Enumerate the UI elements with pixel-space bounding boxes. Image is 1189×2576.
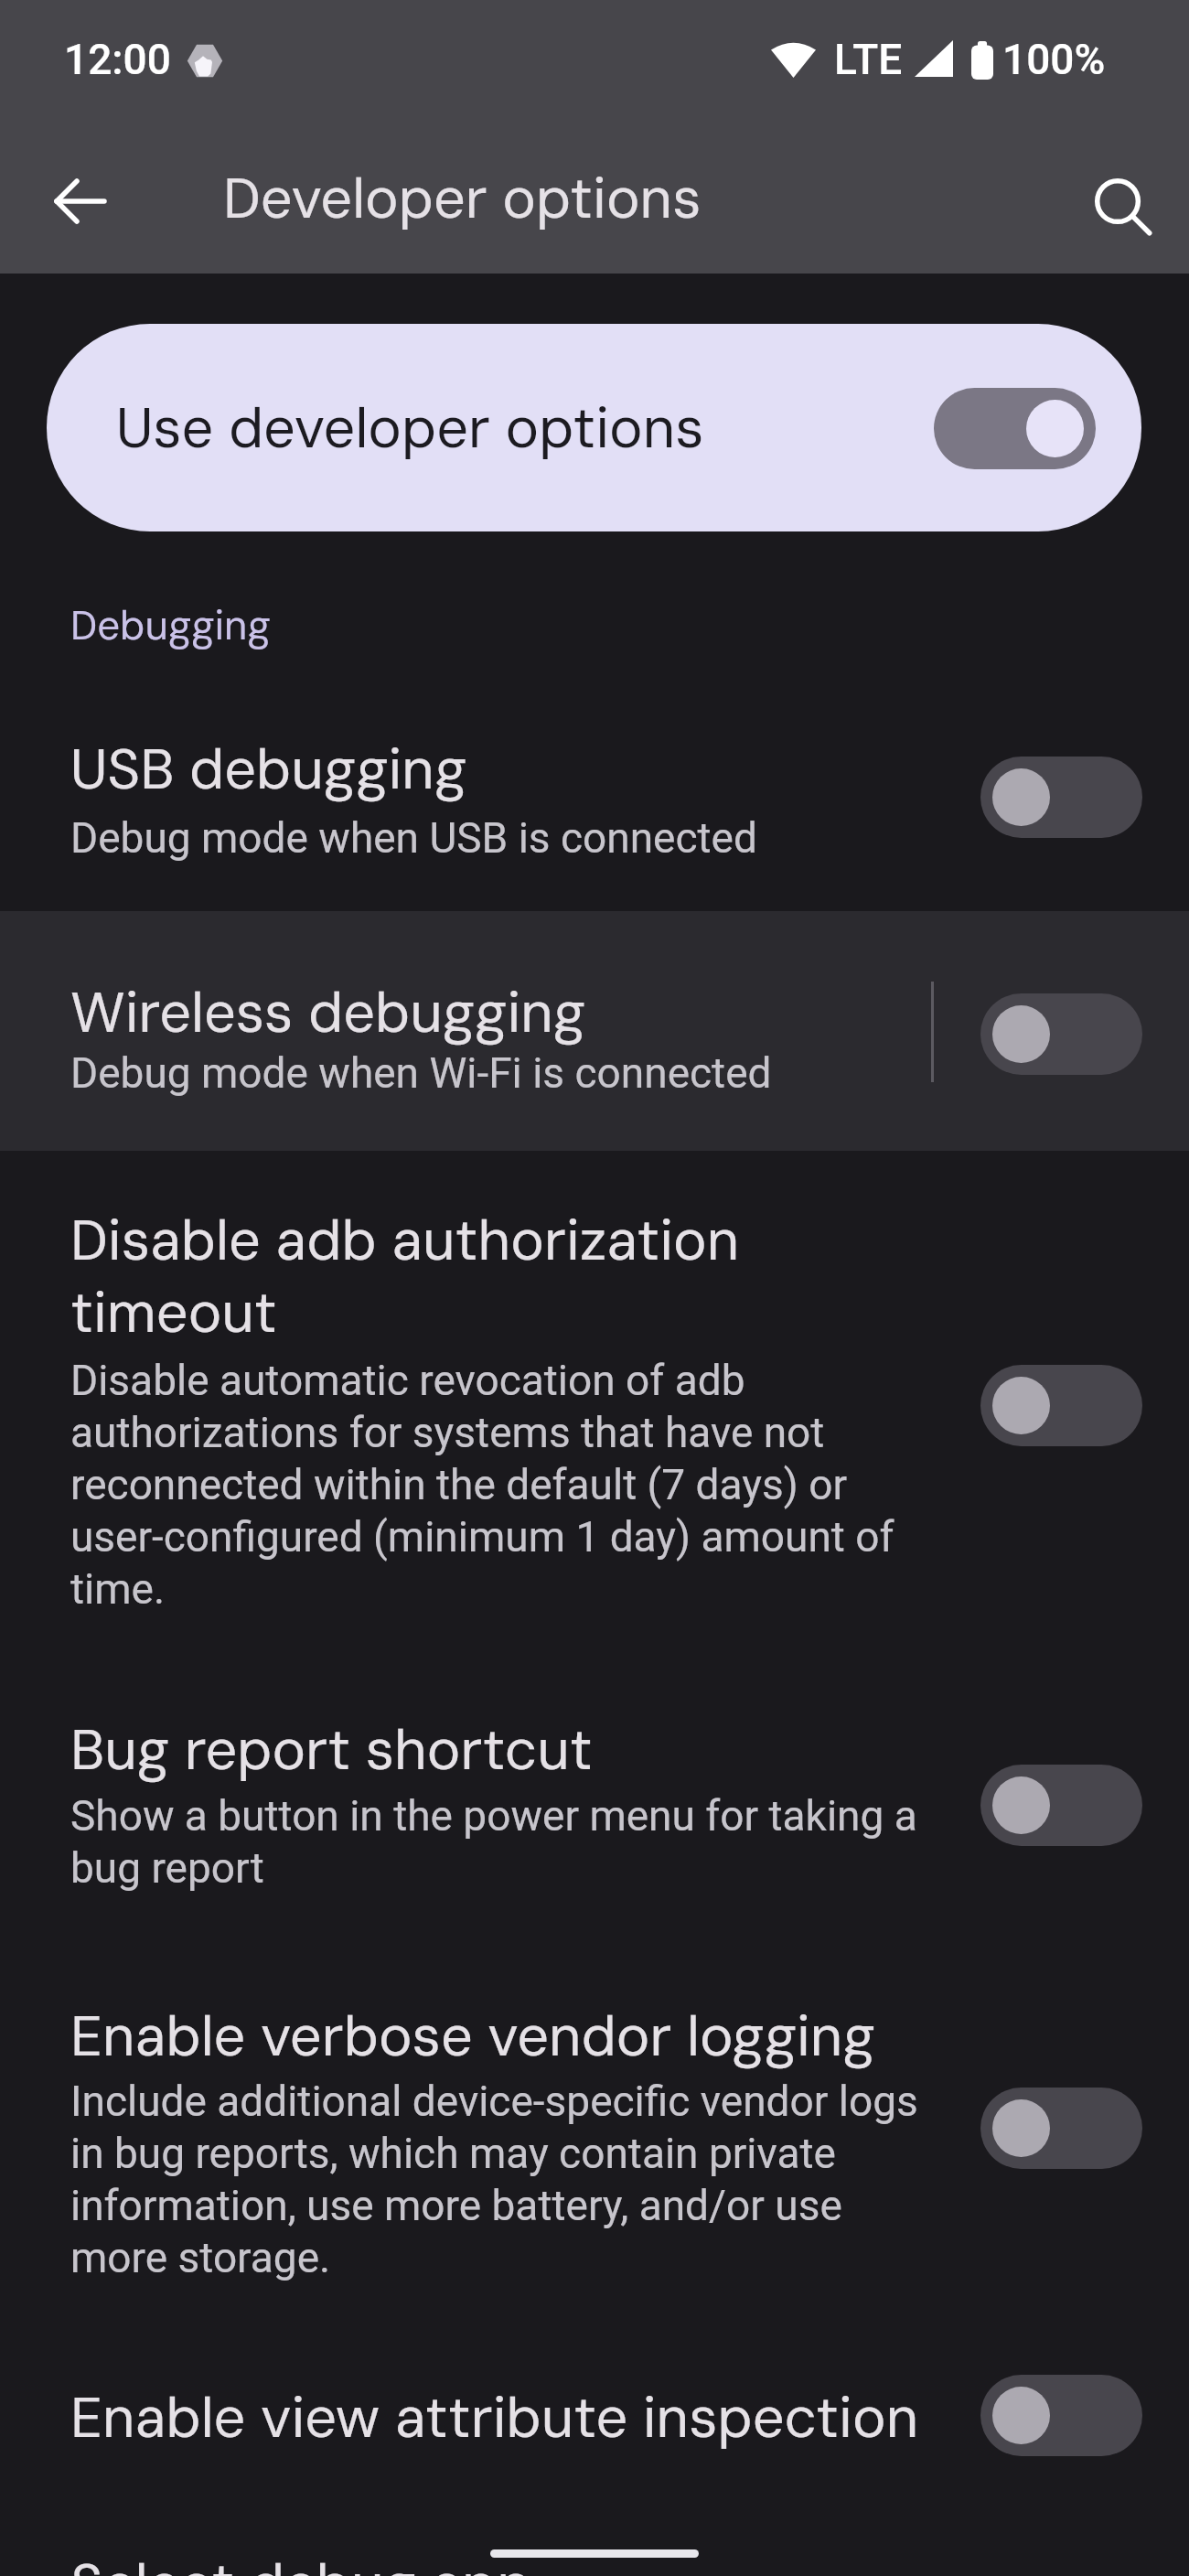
staticText: 12:00 bbox=[64, 35, 171, 84]
staticText: Use developer options bbox=[116, 392, 704, 465]
staticText: Disable automatic revocation of adb auth… bbox=[70, 1356, 894, 1614]
staticText: Select debug app bbox=[70, 2548, 532, 2576]
button[interactable] bbox=[934, 388, 1096, 469]
staticText: Disable adb authorization timeout bbox=[70, 1204, 740, 1349]
button[interactable] bbox=[0, 1180, 1189, 1619]
staticText: Include additional device-specific vendo… bbox=[70, 2077, 918, 2282]
button[interactable] bbox=[980, 2088, 1142, 2169]
staticText: Debug mode when USB is connected bbox=[70, 813, 757, 863]
button[interactable] bbox=[980, 2375, 1142, 2456]
button[interactable] bbox=[0, 695, 1189, 896]
staticText: Bug report shortcut bbox=[70, 1713, 593, 1787]
staticText: Debug mode when Wi-Fi is connected bbox=[70, 1048, 772, 1098]
staticText: Enable view attribute inspection bbox=[70, 2381, 919, 2454]
staticText: 100% bbox=[1002, 35, 1106, 84]
button[interactable] bbox=[980, 993, 1142, 1075]
button[interactable] bbox=[1088, 172, 1156, 240]
button[interactable] bbox=[0, 1692, 1189, 1903]
staticText: LTE bbox=[834, 35, 903, 84]
button[interactable] bbox=[0, 911, 1189, 1151]
button[interactable] bbox=[0, 2351, 1189, 2479]
button[interactable] bbox=[980, 757, 1142, 838]
button[interactable] bbox=[44, 165, 117, 238]
button[interactable] bbox=[980, 1765, 1142, 1846]
staticText: Developer options bbox=[223, 162, 702, 235]
staticText: Debugging bbox=[70, 599, 271, 651]
button[interactable] bbox=[980, 1365, 1142, 1446]
button[interactable]: Use developer options bbox=[47, 324, 1141, 531]
staticText: USB debugging bbox=[70, 733, 467, 806]
staticText: Show a button in the power menu for taki… bbox=[70, 1791, 917, 1893]
staticText: Wireless debugging bbox=[70, 976, 586, 1049]
staticText: Enable verbose vendor logging bbox=[70, 2000, 875, 2073]
button[interactable] bbox=[0, 1976, 1189, 2296]
